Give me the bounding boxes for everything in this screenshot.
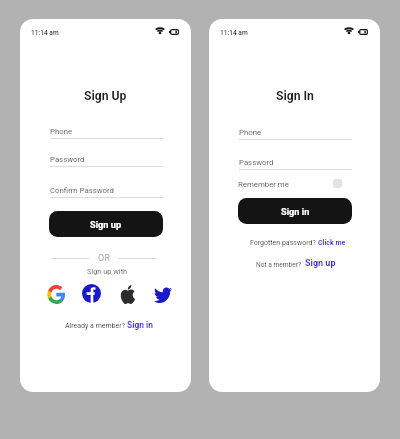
button[interactable]: Remember me [333,179,342,188]
button[interactable]: Sign up [49,211,163,237]
staticText: Forgotten password? [250,239,318,247]
staticText: Sign in [281,206,310,217]
button[interactable]: Sign up with Google [44,282,68,307]
staticText: Confirm Password [50,186,115,195]
staticText: OR [98,253,110,264]
staticText: Click me [318,239,346,247]
staticText: Not a member? [256,261,305,269]
staticText: Sign in [127,320,153,330]
staticText: Sign Up [84,89,127,103]
staticText: Remember me [238,180,289,189]
staticText: Phone [50,127,73,136]
staticText: Sign up [90,219,122,230]
staticText: Password [50,155,85,164]
staticText: Sign up with [87,267,128,276]
staticText: Sign In [276,89,314,103]
button[interactable]: Already a member? [23,320,191,330]
staticText: Sign up [305,258,336,269]
staticText: Already a member? [65,322,127,330]
button[interactable]: Sign in [238,198,352,224]
button[interactable]: Sign up with Twitter [151,284,175,306]
button[interactable]: Sign up with Facebook [79,281,104,306]
button[interactable]: Forgotten password? [212,239,380,247]
staticText: 11:14 am [220,29,248,37]
staticText: Password [239,158,274,167]
staticText: Phone [239,128,262,137]
button[interactable]: Sign up with Apple [117,282,138,307]
button[interactable]: Not a member? [210,258,380,269]
staticText: 11:14 am [31,29,59,37]
